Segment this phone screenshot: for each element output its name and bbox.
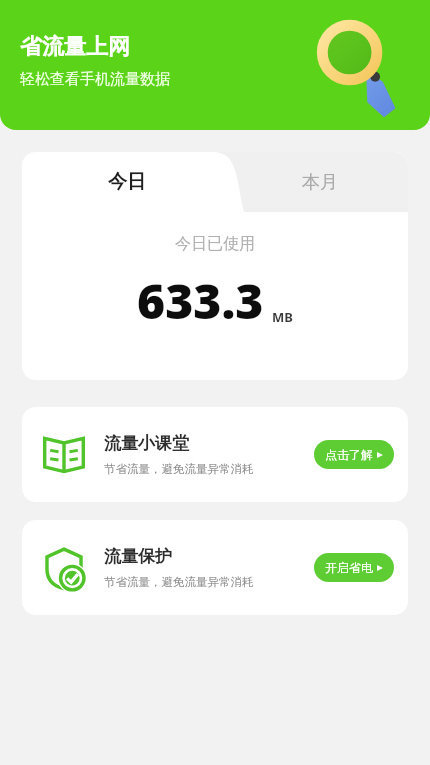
button[interactable]: 今日 — [22, 152, 232, 212]
button[interactable]: 开启省电 — [314, 553, 394, 582]
staticText: 流量保护 — [104, 546, 172, 567]
button[interactable]: 点击了解 — [314, 440, 394, 469]
staticText: 节省流量，避免流量异常消耗 — [104, 575, 254, 589]
staticText: 节省流量，避免流量异常消耗 — [104, 462, 254, 476]
staticText: 省流量上网 — [20, 33, 130, 61]
staticText: 点击了解 — [325, 447, 373, 462]
other: 流量保护 — [41, 545, 87, 591]
button[interactable]: 流量小课堂 — [22, 407, 408, 502]
staticText: 本月 — [302, 171, 338, 194]
other: 流量小课堂 — [41, 432, 87, 478]
staticText: 开启省电 — [325, 560, 373, 575]
staticText: MB — [272, 308, 293, 326]
staticText: 今日已使用 — [22, 234, 408, 254]
staticText: 流量小课堂 — [104, 433, 189, 454]
button[interactable]: 本月 — [232, 152, 408, 212]
button[interactable]: 流量保护 — [22, 520, 408, 615]
staticText: 633.3 — [137, 268, 264, 333]
staticText: 今日 — [108, 170, 146, 194]
staticText: 轻松查看手机流量数据 — [20, 70, 170, 89]
